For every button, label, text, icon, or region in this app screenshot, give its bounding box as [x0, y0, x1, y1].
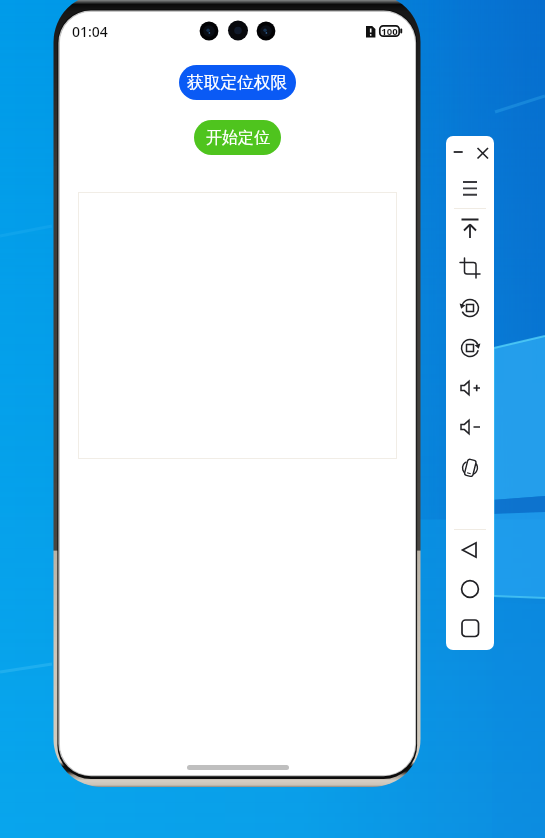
staticText: 100 [381, 25, 398, 37]
button[interactable]: Back [456, 536, 484, 564]
button[interactable]: Recents [456, 614, 484, 642]
button[interactable]: Minimize [448, 139, 470, 165]
button[interactable]: 获取定位权限 [179, 65, 296, 100]
staticText: 01:04 [72, 22, 108, 41]
button[interactable]: Home [456, 575, 484, 603]
button[interactable]: 开始定位 [194, 120, 281, 155]
button[interactable]: Screenshot [456, 254, 484, 282]
staticText: 获取定位权限 [187, 72, 288, 93]
button[interactable]: Close [470, 139, 492, 165]
button[interactable]: Volume down [456, 413, 484, 441]
button[interactable]: Menu [456, 174, 484, 202]
button[interactable]: Volume up [456, 374, 484, 402]
button[interactable]: Rotate device [456, 454, 484, 482]
button[interactable]: Rotate left [456, 294, 484, 322]
staticText: 开始定位 [206, 128, 270, 148]
button[interactable]: Rotate right [456, 334, 484, 362]
button[interactable]: Power [456, 215, 484, 243]
